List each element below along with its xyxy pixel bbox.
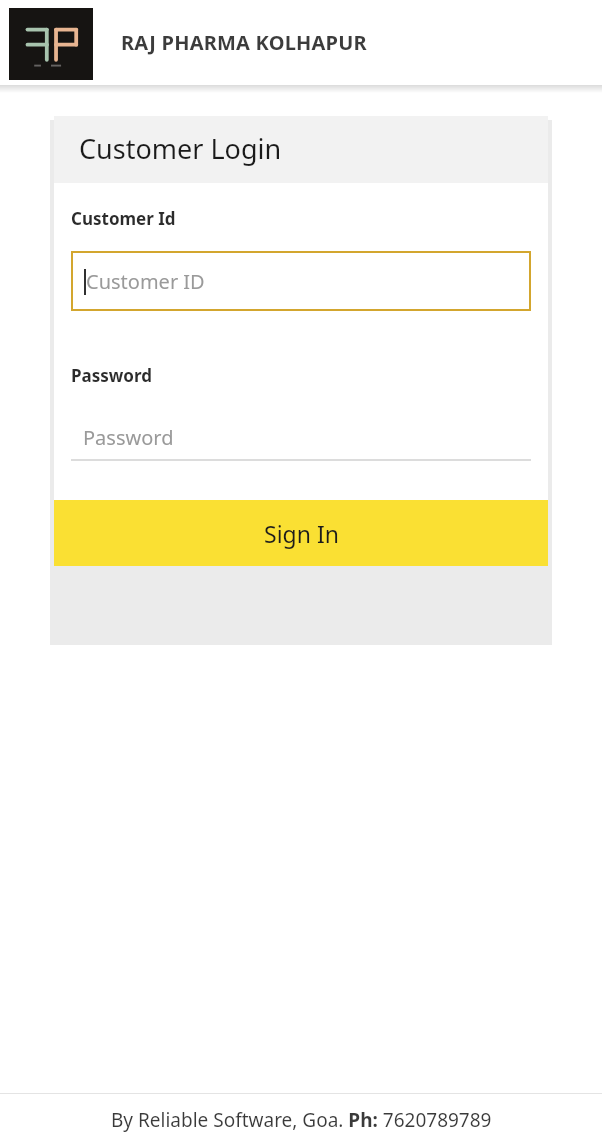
staticText: Password (83, 424, 174, 451)
button[interactable]: Sign In (54, 500, 548, 566)
button[interactable]: RAJ PHARMA KOLHAPUR (121, 29, 367, 56)
staticText: Customer Id (71, 207, 176, 230)
button[interactable]: By Reliable Software, Goa. Ph: 762078978… (0, 1094, 602, 1145)
staticText: Customer Login (79, 130, 282, 167)
staticText: By Reliable Software, Goa. Ph: 762078978… (111, 1107, 492, 1133)
staticText: Password (71, 364, 152, 387)
button[interactable]: Customer ID (71, 251, 531, 311)
staticText: RAJ PHARMA KOLHAPUR (121, 29, 367, 56)
button[interactable]: Password (71, 415, 531, 461)
other: Raj Pharma logo (9, 8, 93, 80)
staticText: Sign In (264, 518, 339, 549)
staticText: Customer ID (86, 268, 205, 295)
